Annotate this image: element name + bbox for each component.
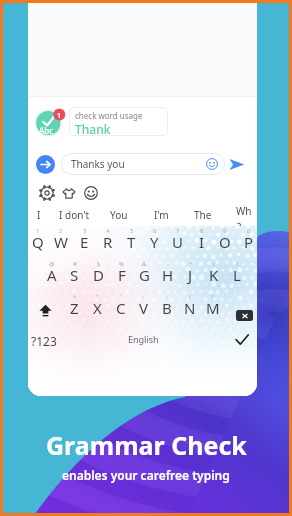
staticText: I (37, 208, 41, 222)
staticText: 2 (59, 227, 63, 235)
staticText: D (93, 265, 104, 285)
button[interactable]: ) (225, 260, 248, 284)
button[interactable]: You (110, 208, 128, 222)
staticText: English (128, 333, 159, 345)
button[interactable]: " (86, 293, 109, 317)
button[interactable]: ! (178, 293, 201, 317)
staticText: % (119, 260, 124, 268)
button[interactable]: * (63, 293, 86, 317)
staticText: " (96, 293, 99, 301)
button[interactable]: 9 (213, 227, 236, 251)
staticText: @ (49, 260, 55, 268)
staticText: Thank (75, 121, 111, 136)
staticText: 4 (106, 227, 110, 235)
button[interactable]: ' (109, 293, 132, 317)
button[interactable]: @ (40, 260, 63, 284)
button[interactable]: $ (87, 260, 110, 284)
button[interactable]: : (132, 293, 155, 317)
button[interactable]: 7 (166, 227, 189, 251)
button[interactable]: I (37, 208, 41, 222)
button[interactable]: % (110, 260, 133, 284)
staticText: Y (150, 232, 159, 252)
button[interactable]: Enter (233, 331, 251, 349)
button[interactable]: ; (155, 293, 178, 317)
staticText: I don't (59, 208, 90, 222)
button[interactable]: Themes (59, 183, 79, 203)
staticText: Thanks you (71, 157, 125, 171)
button[interactable]: 6 (143, 227, 166, 251)
staticText: 1 (36, 227, 40, 235)
staticText: You (110, 208, 128, 222)
staticText: P (244, 232, 254, 252)
staticText: ' (120, 293, 122, 301)
staticText: V (139, 298, 149, 318)
staticText: M (206, 298, 220, 318)
staticText: ! (189, 293, 191, 301)
staticText: S (70, 265, 79, 285)
staticText: 5 (130, 227, 134, 235)
button[interactable]: . (203, 325, 215, 341)
staticText: O (219, 232, 231, 252)
staticText: Grammar Check (46, 428, 247, 462)
button[interactable]: + (179, 260, 202, 284)
button[interactable]: I don't (59, 208, 90, 222)
button[interactable]: 1 (28, 227, 49, 251)
staticText: 8 (200, 227, 204, 235)
staticText: ? (211, 293, 214, 301)
staticText: F (118, 265, 126, 285)
staticText: 0 (247, 227, 251, 235)
staticText: E (80, 232, 89, 252)
button[interactable]: 8 (190, 227, 213, 251)
button[interactable]: Settings (37, 183, 57, 203)
button[interactable]: # (63, 260, 86, 284)
button[interactable]: Wha (236, 204, 257, 226)
staticText: L (233, 265, 241, 285)
staticText: - (167, 260, 169, 268)
button[interactable]: ? (201, 293, 224, 317)
button[interactable]: Backspace (236, 310, 253, 321)
staticText: I (199, 232, 205, 252)
button[interactable]: Shift (34, 302, 57, 318)
button[interactable]: & (133, 260, 156, 284)
button[interactable]: The (194, 208, 212, 222)
button[interactable]: Emoji (81, 183, 101, 203)
button[interactable]: ?123 (31, 333, 57, 349)
staticText: Z (70, 298, 79, 318)
staticText: ?123 (31, 333, 57, 349)
button[interactable]: Thanks you (61, 153, 225, 175)
button[interactable]: - (156, 260, 179, 284)
staticText: 6 (153, 227, 157, 235)
staticText: 9 (223, 227, 227, 235)
staticText: N (184, 298, 196, 318)
button[interactable]: Send (228, 156, 245, 173)
button[interactable]: Check word usage (34, 105, 68, 139)
button[interactable]: Forward (36, 155, 55, 174)
button[interactable]: 2 (49, 227, 72, 251)
staticText: # (73, 260, 77, 268)
staticText: ; (166, 293, 168, 301)
staticText: $ (97, 260, 101, 268)
staticText: * (73, 293, 77, 301)
staticText: ) (236, 260, 238, 268)
button[interactable]: 0 (237, 227, 257, 251)
button[interactable]: 5 (120, 227, 143, 251)
button[interactable]: 3 (73, 227, 96, 251)
staticText: check word usage (75, 110, 143, 121)
staticText: A (47, 265, 57, 285)
staticText: U (172, 232, 183, 252)
staticText: R (103, 232, 113, 252)
button[interactable]: 4 (96, 227, 119, 251)
staticText: ( (213, 260, 215, 268)
staticText: 1 (57, 111, 62, 121)
staticText: enables your carefree typing (62, 467, 230, 483)
staticText: H (162, 265, 174, 285)
staticText: I'm (154, 208, 169, 222)
staticText: J (188, 265, 193, 285)
button[interactable]: I'm (154, 208, 169, 222)
button[interactable]: check word usage (69, 107, 168, 136)
button[interactable]: English (123, 333, 163, 345)
button[interactable]: ( (202, 260, 225, 284)
